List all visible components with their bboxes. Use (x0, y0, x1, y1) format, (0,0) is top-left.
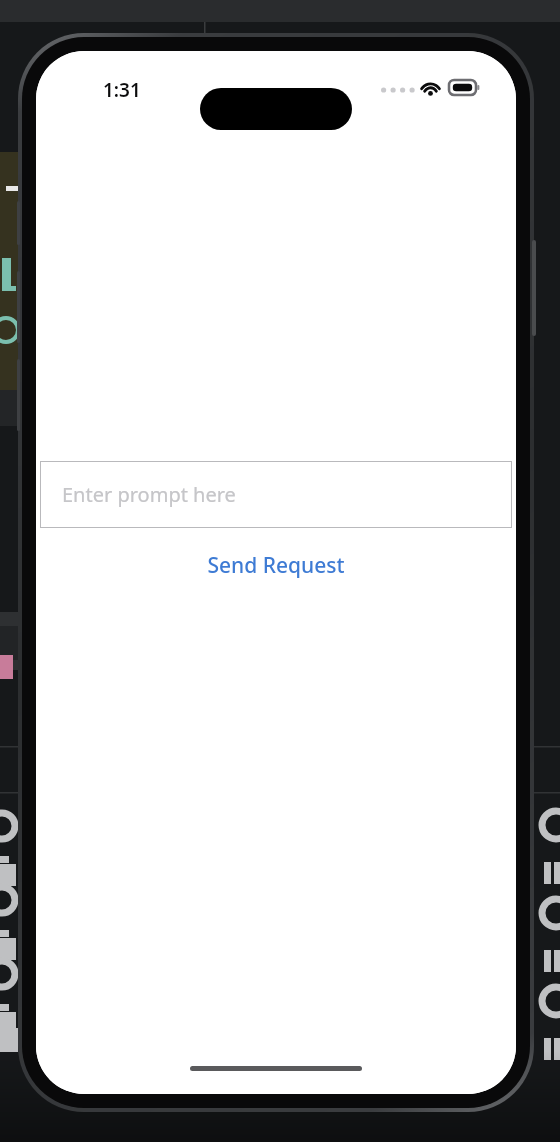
button[interactable]: Send Request (36, 528, 516, 603)
staticText: Enter prompt here (62, 481, 236, 508)
button[interactable]: Enter prompt here (40, 461, 512, 528)
staticText: Send Request (207, 551, 345, 580)
staticText: 1:31 (103, 77, 141, 103)
